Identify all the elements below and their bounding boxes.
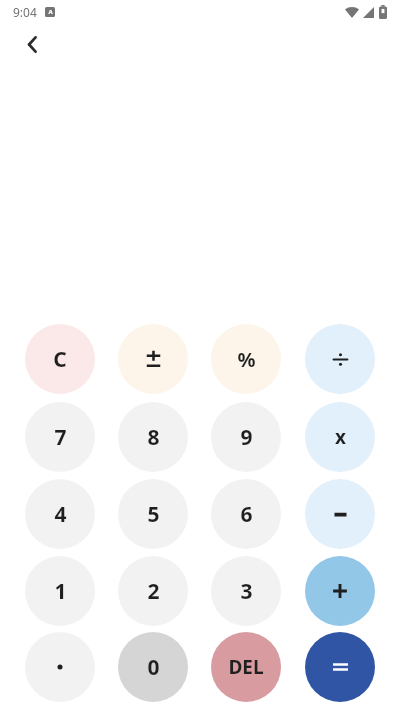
button[interactable]: Plus [305,556,375,626]
staticText: % [237,346,256,373]
button[interactable]: 7 [25,402,95,472]
button[interactable]: 2 [118,556,188,626]
button[interactable]: Divide [305,324,375,394]
button[interactable]: 5 [118,479,188,549]
staticText: DEL [228,654,264,680]
staticText: 2 [147,577,160,606]
button[interactable]: DEL [211,632,281,702]
button[interactable]: x [305,402,375,472]
button[interactable]: Equals [305,632,375,702]
staticText: 9:04 [13,4,37,20]
button[interactable]: 3 [211,556,281,626]
staticText: C [53,345,67,374]
button[interactable]: Plus minus [118,324,188,394]
staticText: 1 [54,577,67,606]
staticText: 8 [147,423,160,452]
button[interactable]: 4 [25,479,95,549]
staticText: 4 [54,500,67,529]
button[interactable]: Back [10,22,54,66]
staticText: 6 [240,500,253,529]
button[interactable]: 8 [118,402,188,472]
staticText: 7 [54,423,67,452]
button[interactable]: 1 [25,556,95,626]
staticText: 0 [147,653,160,682]
staticText: 9 [240,423,253,452]
button[interactable]: Minus [305,479,375,549]
staticText: 5 [147,500,160,529]
button[interactable]: 0 [118,632,188,702]
staticText: 3 [240,577,253,606]
staticText: A [48,8,53,16]
button[interactable]: C [25,324,95,394]
button[interactable]: 6 [211,479,281,549]
button[interactable]: 9 [211,402,281,472]
staticText: x [335,424,346,450]
button[interactable]: % [211,324,281,394]
button[interactable]: Decimal point [25,632,95,702]
